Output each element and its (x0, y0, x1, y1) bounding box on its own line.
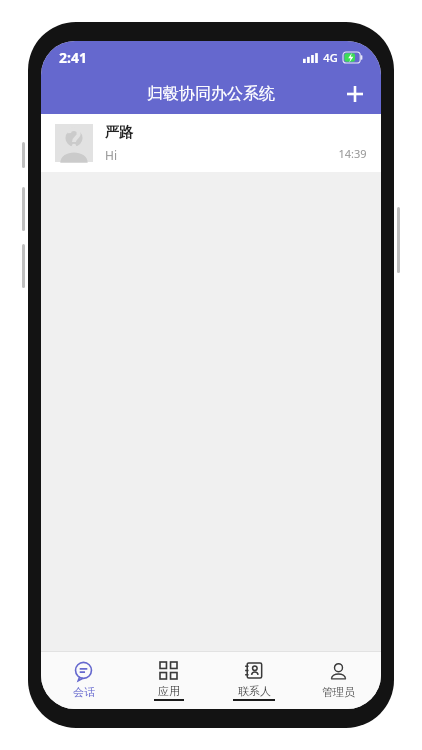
staticText: Hi (105, 147, 117, 163)
button[interactable]: 严路 (41, 114, 381, 172)
button[interactable]: 联系人 (211, 651, 296, 709)
staticText: 4G (323, 50, 338, 65)
staticText: 严路 (105, 124, 133, 142)
button[interactable]: 应用 (126, 651, 211, 709)
button[interactable]: Add (335, 74, 375, 114)
staticText: 14:39 (338, 146, 367, 161)
button[interactable]: 管理员 (296, 651, 381, 709)
staticText: 2:41 (59, 48, 87, 67)
staticText: 归毂协同办公系统 (147, 84, 275, 104)
button[interactable]: 会话 (41, 651, 126, 709)
staticText: 联系人 (238, 684, 271, 698)
staticText: 应用 (158, 684, 180, 698)
staticText: 会话 (73, 685, 95, 699)
staticText: 管理员 (322, 685, 355, 699)
